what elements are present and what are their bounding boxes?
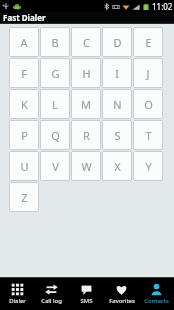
staticText: V (52, 159, 59, 174)
button[interactable]: Call log (34, 278, 69, 310)
staticText: 11:02 (152, 1, 173, 12)
staticText: D (113, 35, 122, 50)
staticText: Contacts (144, 297, 169, 305)
staticText: H (82, 66, 91, 81)
staticText: P (21, 128, 28, 143)
button[interactable]: W (71, 151, 101, 181)
button[interactable]: V (40, 151, 70, 181)
button[interactable]: T (133, 120, 163, 150)
button[interactable]: B (40, 27, 70, 57)
button[interactable]: U (9, 151, 39, 181)
button[interactable]: I (102, 58, 132, 88)
button[interactable]: Y (133, 151, 163, 181)
button[interactable]: SMS (69, 278, 104, 310)
button[interactable]: X (102, 151, 132, 181)
staticText: B (51, 35, 59, 50)
button[interactable]: Q (40, 120, 70, 150)
staticText: K (21, 97, 28, 112)
staticText: R (83, 128, 90, 143)
staticText: L (52, 97, 58, 112)
staticText: Dialer (9, 297, 26, 305)
button[interactable]: J (133, 58, 163, 88)
button[interactable]: K (9, 89, 39, 119)
staticText: U (20, 159, 29, 174)
button[interactable]: C (71, 27, 101, 57)
staticText: X (114, 159, 121, 174)
button[interactable]: R (71, 120, 101, 150)
button[interactable]: E (133, 27, 163, 57)
button[interactable]: Contacts (139, 278, 174, 310)
staticText: A (20, 35, 28, 50)
staticText: SMS (80, 297, 93, 305)
button[interactable]: O (133, 89, 163, 119)
button[interactable]: F (9, 58, 39, 88)
staticText: Call log (41, 297, 62, 305)
button[interactable]: L (40, 89, 70, 119)
staticText: M (81, 97, 91, 112)
staticText: Y (145, 159, 152, 174)
staticText: G (51, 66, 60, 81)
button[interactable]: A (9, 27, 39, 57)
staticText: C (83, 35, 90, 50)
button[interactable]: Z (9, 182, 39, 212)
button[interactable]: G (40, 58, 70, 88)
staticText: S (114, 128, 121, 143)
staticText: I (115, 66, 119, 81)
button[interactable]: S (102, 120, 132, 150)
staticText: Fast Dialer (3, 12, 46, 23)
staticText: E (145, 35, 152, 50)
staticText: J (146, 66, 150, 81)
button[interactable]: Favorites (104, 278, 139, 310)
button[interactable]: H (71, 58, 101, 88)
button[interactable]: P (9, 120, 39, 150)
staticText: Z (21, 190, 28, 205)
button[interactable]: Dialer (0, 278, 34, 310)
staticText: N (113, 97, 122, 112)
staticText: T (145, 128, 152, 143)
staticText: Q (51, 128, 60, 143)
staticText: O (144, 97, 153, 112)
staticText: W (81, 159, 92, 174)
button[interactable]: M (71, 89, 101, 119)
button[interactable]: D (102, 27, 132, 57)
staticText: Favorites (109, 297, 135, 305)
button[interactable]: N (102, 89, 132, 119)
staticText: F (21, 66, 27, 81)
